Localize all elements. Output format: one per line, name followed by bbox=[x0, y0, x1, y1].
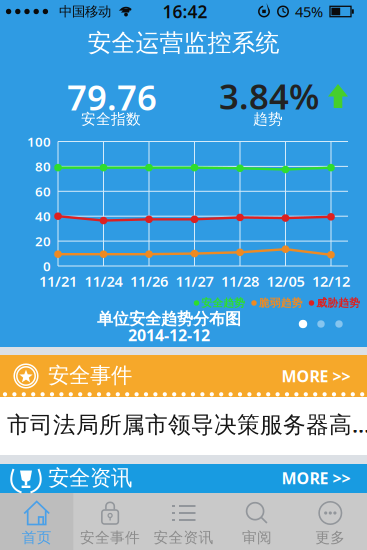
staticText: 市司法局所属市领导决策服务器高... bbox=[7, 409, 367, 439]
staticText: 安全资讯 bbox=[48, 465, 132, 491]
button[interactable]: 审阅 bbox=[220, 493, 294, 550]
staticText: 11/28 bbox=[221, 271, 259, 291]
staticText: 2014-12-12 bbox=[128, 324, 210, 346]
button[interactable]: MORE >> bbox=[276, 355, 356, 397]
staticText: 安全事件 bbox=[48, 362, 132, 389]
button[interactable]: 安全事件 bbox=[73, 493, 147, 550]
staticText: 安全趋势 bbox=[201, 296, 245, 309]
button[interactable]: 安全资讯 bbox=[147, 493, 220, 550]
staticText: MORE >> bbox=[281, 365, 350, 387]
staticText: 12/05 bbox=[266, 271, 304, 291]
staticText: 安全运营监控系统 bbox=[87, 28, 279, 58]
staticText: 12/12 bbox=[312, 271, 350, 291]
staticText: 79.76 bbox=[67, 74, 157, 120]
staticText: 安全事件 bbox=[80, 528, 140, 546]
staticText: 单位安全趋势分布图 bbox=[97, 309, 241, 329]
staticText: 安全指数 bbox=[81, 110, 141, 128]
staticText: 11/24 bbox=[84, 271, 122, 291]
staticText: 45% bbox=[295, 2, 323, 21]
staticText: 更多 bbox=[315, 528, 345, 546]
staticText: 脆弱趋势 bbox=[259, 296, 303, 309]
staticText: 威胁趋势 bbox=[316, 296, 360, 309]
staticText: 11/21 bbox=[39, 271, 77, 291]
staticText: 100 bbox=[27, 133, 51, 150]
staticText: 11/27 bbox=[175, 271, 213, 291]
button[interactable]: 市司法局所属市领导决策服务器高... bbox=[7, 395, 367, 453]
staticText: 80 bbox=[35, 157, 51, 175]
staticText: 60 bbox=[35, 182, 51, 200]
staticText: 安全资讯 bbox=[153, 528, 213, 546]
staticText: 中国移动 bbox=[59, 3, 111, 20]
button[interactable]: 首页 bbox=[0, 493, 73, 550]
staticText: 16:42 bbox=[162, 0, 207, 23]
staticText: MORE >> bbox=[281, 467, 350, 489]
staticText: 0 bbox=[43, 257, 51, 275]
staticText: 趋势 bbox=[253, 110, 283, 128]
staticText: 审阅 bbox=[242, 528, 272, 546]
button[interactable]: 更多 bbox=[294, 493, 367, 550]
staticText: 首页 bbox=[22, 528, 52, 546]
staticText: 3.84% bbox=[219, 73, 319, 119]
button[interactable]: MORE >> bbox=[276, 463, 356, 492]
staticText: 20 bbox=[35, 232, 51, 250]
staticText: 11/26 bbox=[130, 271, 168, 291]
staticText: 40 bbox=[35, 207, 51, 225]
